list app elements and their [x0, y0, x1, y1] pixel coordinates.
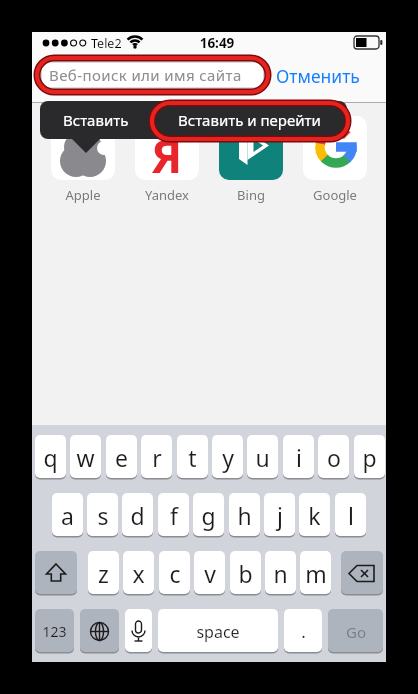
button[interactable]: d: [122, 493, 153, 538]
button[interactable]: h: [229, 493, 260, 538]
button[interactable]: l: [335, 493, 366, 538]
staticText: j: [277, 500, 283, 531]
button[interactable]: [51, 116, 115, 180]
staticText: q: [43, 442, 58, 473]
staticText: y: [222, 442, 234, 473]
staticText: Google: [285, 186, 385, 204]
button[interactable]: i: [283, 435, 314, 480]
staticText: m: [305, 558, 327, 589]
staticText: p: [362, 442, 377, 473]
staticText: z: [98, 558, 109, 589]
staticText: u: [255, 442, 270, 473]
button[interactable]: Отменить: [276, 64, 381, 88]
button[interactable]: k: [299, 493, 330, 538]
staticText: b: [238, 558, 253, 589]
button[interactable]: [80, 609, 119, 654]
button[interactable]: [35, 551, 77, 596]
button[interactable]: Я: [135, 116, 199, 180]
button[interactable]: v: [194, 551, 225, 596]
button[interactable]: p: [354, 435, 385, 480]
staticText: e: [115, 442, 128, 473]
staticText: s: [97, 500, 109, 531]
button[interactable]: e: [106, 435, 137, 480]
button[interactable]: [125, 609, 152, 654]
button[interactable]: m: [300, 551, 331, 596]
staticText: Go: [346, 622, 366, 642]
button[interactable]: y: [212, 435, 243, 480]
button[interactable]: q: [35, 435, 66, 480]
button[interactable]: [341, 551, 383, 596]
button[interactable]: x: [123, 551, 154, 596]
button[interactable]: r: [141, 435, 172, 480]
staticText: g: [201, 500, 216, 531]
staticText: space: [196, 621, 240, 643]
staticText: h: [237, 500, 252, 531]
button[interactable]: n: [265, 551, 296, 596]
button[interactable]: w: [70, 435, 101, 480]
staticText: v: [204, 558, 216, 589]
button[interactable]: [303, 116, 367, 180]
button[interactable]: 123: [35, 609, 74, 654]
button[interactable]: Вставить и перейти: [152, 101, 347, 139]
staticText: .: [301, 620, 306, 643]
staticText: t: [188, 442, 197, 473]
button[interactable]: s: [87, 493, 118, 538]
button[interactable]: z: [88, 551, 119, 596]
staticText: Отменить: [276, 64, 360, 88]
staticText: i: [296, 442, 302, 473]
staticText: n: [273, 558, 288, 589]
staticText: r: [152, 442, 162, 473]
staticText: Bing: [201, 186, 301, 204]
staticText: Вставить: [63, 110, 129, 130]
staticText: k: [308, 500, 321, 531]
button[interactable]: t: [177, 435, 208, 480]
staticText: l: [348, 500, 354, 531]
button[interactable]: [219, 116, 283, 180]
staticText: Apple: [33, 186, 133, 204]
staticText: o: [327, 442, 341, 473]
button[interactable]: Go: [328, 609, 383, 654]
button[interactable]: c: [159, 551, 190, 596]
button[interactable]: o: [318, 435, 349, 480]
staticText: d: [130, 500, 145, 531]
staticText: a: [61, 500, 74, 531]
button[interactable]: Вставить: [40, 101, 152, 139]
button[interactable]: Веб-поиск или имя сайта: [41, 62, 264, 88]
button[interactable]: f: [158, 493, 189, 538]
staticText: Yandex: [117, 186, 217, 204]
button[interactable]: g: [193, 493, 224, 538]
staticText: x: [132, 558, 145, 589]
button[interactable]: b: [230, 551, 261, 596]
button[interactable]: u: [247, 435, 278, 480]
staticText: 16:49: [193, 34, 241, 52]
staticText: f: [170, 500, 178, 531]
staticText: c: [169, 558, 181, 589]
button[interactable]: j: [264, 493, 295, 538]
staticText: w: [76, 442, 95, 473]
staticText: Веб-поиск или имя сайта: [49, 65, 242, 85]
button[interactable]: .: [284, 609, 322, 654]
staticText: 123: [42, 622, 67, 641]
button[interactable]: a: [52, 493, 83, 538]
staticText: Я: [151, 124, 183, 187]
staticText: Tele2: [91, 35, 122, 52]
staticText: Вставить и перейти: [178, 110, 321, 130]
button[interactable]: space: [158, 609, 278, 654]
